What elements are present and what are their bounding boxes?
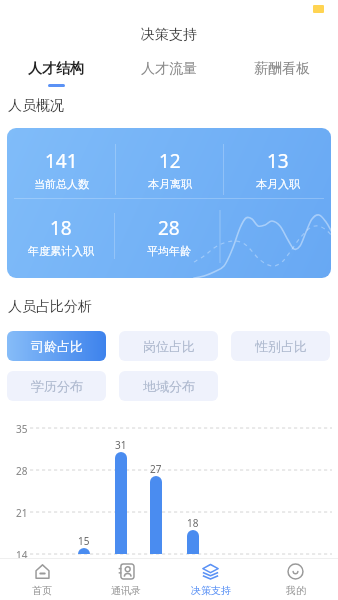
staticText: 18 — [50, 215, 72, 241]
staticText: 通讯录 — [111, 584, 141, 597]
button[interactable]: 首页 — [0, 558, 84, 600]
staticText: 14 — [16, 548, 28, 562]
staticText: 当前总人数 — [34, 177, 89, 191]
staticText: 31 — [115, 438, 127, 452]
staticText: 28 — [158, 215, 180, 241]
staticText: 27 — [150, 462, 162, 476]
staticText: 学历分布 — [31, 378, 83, 394]
staticText: 司龄占比 — [31, 338, 83, 354]
staticText: 15 — [78, 534, 90, 548]
button[interactable]: 性别占比 — [231, 331, 330, 361]
staticText: 年度累计入职 — [28, 244, 94, 258]
button[interactable]: 人才流量 — [112, 60, 225, 90]
staticText: 岗位占比 — [143, 338, 195, 354]
staticText: 决策支持 — [141, 26, 197, 42]
staticText: 人员概况 — [8, 97, 64, 115]
button[interactable]: 学历分布 — [7, 371, 106, 401]
staticText: 28 — [16, 464, 28, 478]
staticText: 人才流量 — [141, 60, 197, 78]
staticText: 平均年龄 — [147, 244, 191, 258]
staticText: 薪酬看板 — [254, 60, 310, 78]
staticText: 首页 — [32, 584, 52, 597]
staticText: 决策支持 — [191, 584, 231, 597]
button[interactable]: 决策支持 — [168, 558, 253, 600]
staticText: 性别占比 — [255, 338, 307, 354]
staticText: 我的 — [286, 584, 306, 597]
button[interactable]: 人才结构 — [0, 60, 112, 90]
staticText: 35 — [16, 422, 28, 436]
staticText: 13 — [267, 148, 289, 174]
button[interactable]: 岗位占比 — [119, 331, 218, 361]
button[interactable]: 薪酬看板 — [225, 60, 338, 90]
staticText: 12 — [159, 148, 181, 174]
staticText: 人员占比分析 — [8, 298, 92, 316]
staticText: 21 — [16, 506, 28, 520]
staticText: 18 — [187, 516, 199, 530]
staticText: 人才结构 — [28, 60, 84, 78]
staticText: 141 — [45, 148, 78, 174]
button[interactable]: 通讯录 — [84, 558, 168, 600]
staticText: 本月入职 — [256, 177, 300, 191]
staticText: 本月离职 — [148, 177, 192, 191]
staticText: 地域分布 — [143, 378, 195, 394]
button[interactable]: 地域分布 — [119, 371, 218, 401]
button[interactable]: 司龄占比 — [7, 331, 106, 361]
button[interactable]: 我的 — [253, 558, 338, 600]
